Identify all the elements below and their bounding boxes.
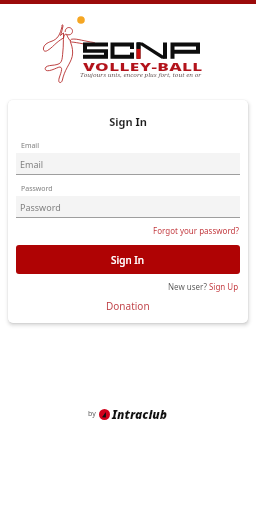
staticText: Donation (106, 299, 150, 313)
staticText: Email (20, 158, 44, 170)
staticText: Toujours unis, encore plus fort, tout en… (80, 71, 202, 79)
button[interactable]: Email (16, 153, 240, 175)
button[interactable]: Password (16, 196, 240, 218)
staticText: Password (20, 201, 61, 213)
staticText: by (88, 409, 96, 419)
button[interactable]: New user? Sign Up (167, 280, 240, 293)
staticText: Password (21, 184, 53, 194)
staticText: New user? Sign Up (168, 281, 239, 292)
staticText: Email (21, 141, 39, 151)
staticText: Intraclub (112, 406, 168, 422)
staticText: Sign In (111, 253, 145, 267)
staticText: Sign In (8, 114, 248, 129)
button[interactable]: Donation (102, 298, 154, 314)
button[interactable]: Sign In (16, 245, 240, 274)
staticText: Forgot your password? (153, 225, 239, 236)
staticText: VOLLEY-BALL (83, 60, 203, 74)
button[interactable]: Forgot your password? (152, 224, 240, 237)
